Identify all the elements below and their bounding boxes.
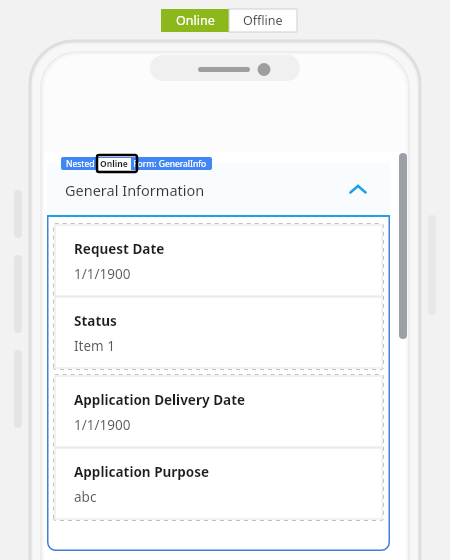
staticText: Request Date: [74, 240, 165, 258]
button[interactable]: Application Delivery Date: [55, 376, 382, 447]
staticText: Online: [176, 12, 215, 29]
staticText: Status: [74, 312, 117, 330]
button[interactable]: General Information: [47, 163, 390, 217]
staticText: Item 1: [74, 337, 115, 355]
button[interactable]: Offline: [229, 9, 297, 32]
staticText: abc: [74, 488, 97, 506]
staticText: General Information: [65, 180, 205, 200]
staticText: Application Purpose: [74, 463, 210, 481]
other: Collapse section: [348, 180, 368, 200]
button[interactable]: Online: [161, 9, 229, 32]
staticText: Online: [100, 158, 128, 170]
staticText: Offline: [243, 12, 283, 29]
button[interactable]: Request Date: [55, 225, 382, 296]
button[interactable]: Status: [55, 297, 382, 368]
staticText: Form: GeneralInfo: [131, 158, 207, 170]
staticText: 1/1/1900: [74, 265, 131, 283]
button[interactable]: Application Purpose: [55, 448, 382, 519]
staticText: Application Delivery Date: [74, 391, 246, 409]
staticText: Nested: [66, 158, 97, 170]
button[interactable]: Nested: [66, 157, 207, 170]
staticText: 1/1/1900: [74, 416, 131, 434]
